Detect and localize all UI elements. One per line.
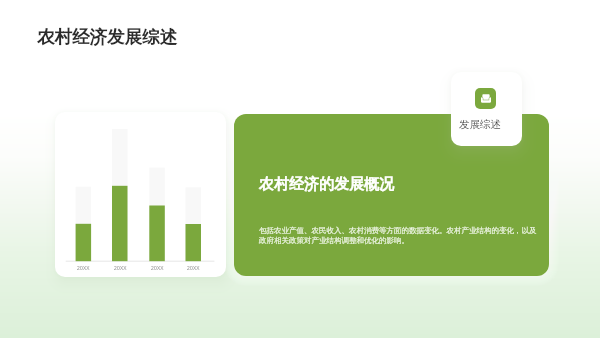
- staticText: 20XX: [70, 264, 96, 271]
- staticText: 发展综述: [459, 118, 501, 131]
- other: Sofa: [481, 94, 491, 103]
- button[interactable]: Sofa: [451, 72, 522, 146]
- button[interactable]: 农村经济的发展概况: [234, 114, 549, 276]
- staticText: 农村经济的发展概况: [259, 175, 394, 194]
- staticText: 20XX: [180, 264, 206, 271]
- button[interactable]: 20XX: [55, 112, 226, 277]
- staticText: 包括农业产值、农民收入、农村消费等方面的数据变化。农村产业结构的变化，以及 政府…: [259, 226, 537, 245]
- staticText: 20XX: [107, 264, 133, 271]
- staticText: 20XX: [144, 264, 170, 271]
- staticText: 农村经济发展综述: [37, 26, 177, 48]
